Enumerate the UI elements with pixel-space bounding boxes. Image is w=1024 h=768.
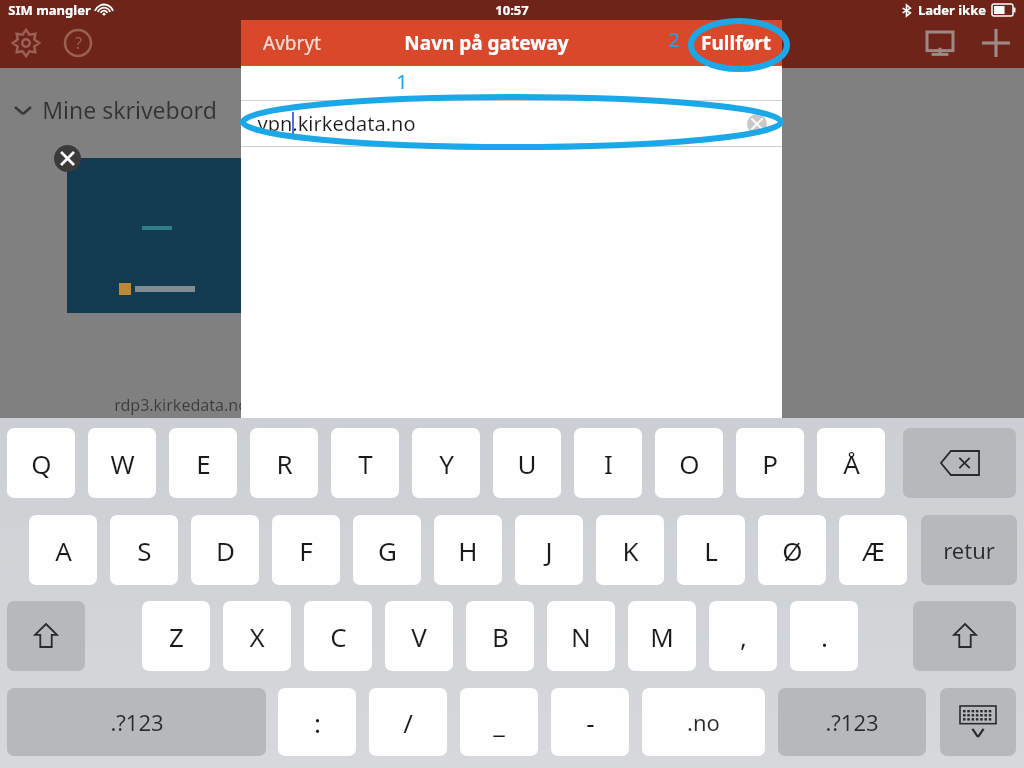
button[interactable]: : <box>278 688 356 756</box>
button[interactable]: .?123 <box>778 688 926 756</box>
staticText: : <box>314 705 321 740</box>
button[interactable]: Ø <box>758 515 826 585</box>
staticText: 10:57 <box>495 1 529 19</box>
staticText: , <box>740 619 747 654</box>
staticText: SIM mangler <box>8 1 91 19</box>
staticText: Y <box>439 446 454 481</box>
button[interactable]: A <box>29 515 97 585</box>
staticText: L <box>704 533 718 568</box>
button[interactable] <box>67 158 247 313</box>
staticText: K <box>622 533 639 568</box>
button[interactable]: Y <box>412 428 480 498</box>
button[interactable]: L <box>677 515 745 585</box>
button[interactable]: I <box>574 428 642 498</box>
staticText: .?123 <box>110 707 164 737</box>
staticText: 1 <box>396 68 408 95</box>
button[interactable]: Remote desktop <box>912 20 968 66</box>
staticText: H <box>458 533 478 568</box>
staticText: . <box>821 619 828 654</box>
button[interactable]: Fullført <box>692 22 780 64</box>
button[interactable]: B <box>466 601 534 671</box>
staticText: X <box>249 619 265 654</box>
button[interactable]: .?123 <box>7 688 266 756</box>
staticText: E <box>196 446 211 481</box>
button[interactable]: J <box>515 515 583 585</box>
staticText: Lader ikke <box>918 1 986 19</box>
staticText: V <box>411 619 427 654</box>
button[interactable]: N <box>547 601 615 671</box>
staticText: vpn.kirkedata.no <box>257 110 416 137</box>
staticText: Avbryt <box>263 30 321 56</box>
button[interactable]: Help <box>52 20 104 66</box>
staticText: U <box>517 446 537 481</box>
staticText: - <box>586 705 595 740</box>
staticText: F <box>299 533 313 568</box>
button[interactable]: O <box>655 428 723 498</box>
staticText: / <box>403 705 413 740</box>
button[interactable]: Avbryt <box>247 20 337 66</box>
button[interactable]: D <box>191 515 259 585</box>
button[interactable]: Z <box>142 601 210 671</box>
staticText: O <box>679 446 700 481</box>
button[interactable]: Settings <box>0 20 52 66</box>
button[interactable]: .no <box>642 688 765 756</box>
staticText: P <box>762 446 778 481</box>
button[interactable]: Æ <box>839 515 907 585</box>
button[interactable]: Add <box>968 20 1024 66</box>
button[interactable]: _ <box>460 688 538 756</box>
staticText: Æ <box>862 533 885 568</box>
staticText: rdp3.kirkedata.no <box>114 394 248 416</box>
button[interactable]: X <box>223 601 291 671</box>
staticText: G <box>378 533 397 568</box>
staticText: T <box>358 446 373 481</box>
button[interactable]: . <box>790 601 858 671</box>
staticText: Å <box>843 446 860 481</box>
staticText: .?123 <box>825 707 879 737</box>
button[interactable]: Å <box>817 428 885 498</box>
button[interactable]: E <box>169 428 237 498</box>
staticText: B <box>492 619 509 654</box>
staticText: Ø <box>782 533 803 568</box>
button[interactable]: Shift <box>7 601 85 671</box>
staticText: retur <box>943 535 995 565</box>
button[interactable]: retur <box>921 515 1017 585</box>
staticText: J <box>545 533 553 568</box>
button[interactable]: Clear text <box>746 113 768 135</box>
button[interactable]: Shift <box>913 601 1016 671</box>
staticText: N <box>571 619 591 654</box>
staticText: ? <box>75 32 82 54</box>
staticText: 2 <box>668 26 680 53</box>
button[interactable]: U <box>493 428 561 498</box>
button[interactable]: / <box>369 688 447 756</box>
staticText: A <box>55 533 72 568</box>
button[interactable]: Hide keyboard <box>940 688 1016 756</box>
staticText: M <box>650 619 674 654</box>
button[interactable]: V <box>385 601 453 671</box>
staticText: Fullført <box>701 30 771 56</box>
button[interactable]: , <box>709 601 777 671</box>
staticText: _ <box>493 705 505 740</box>
button[interactable]: R <box>250 428 318 498</box>
button[interactable]: S <box>110 515 178 585</box>
staticText: .no <box>687 707 720 737</box>
button[interactable]: W <box>88 428 156 498</box>
button[interactable]: Remove desktop <box>54 145 81 172</box>
button[interactable]: Backspace <box>903 428 1016 498</box>
button[interactable]: G <box>353 515 421 585</box>
button[interactable]: Q <box>7 428 75 498</box>
button[interactable]: T <box>331 428 399 498</box>
button[interactable]: vpn.kirkedata.no <box>241 100 782 147</box>
button[interactable]: - <box>551 688 629 756</box>
button[interactable]: C <box>304 601 372 671</box>
staticText: Q <box>31 446 52 481</box>
staticText: Mine skrivebord <box>42 94 217 125</box>
button[interactable]: K <box>596 515 664 585</box>
staticText: C <box>330 619 347 654</box>
button[interactable]: F <box>272 515 340 585</box>
button[interactable]: P <box>736 428 804 498</box>
staticText: W <box>110 446 135 481</box>
button[interactable]: H <box>434 515 502 585</box>
staticText: Z <box>169 619 184 654</box>
button[interactable]: M <box>628 601 696 671</box>
staticText: R <box>276 446 293 481</box>
